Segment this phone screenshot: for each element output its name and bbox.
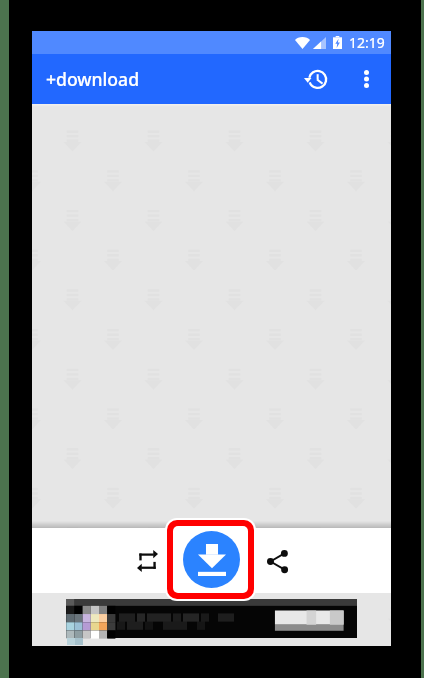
button[interactable]: More options [346,59,386,99]
button[interactable]: Download [183,531,240,588]
button[interactable]: History [294,57,338,101]
staticText: +download [46,67,140,91]
button[interactable]: Share [253,537,301,585]
staticText: 12:19 [349,33,385,52]
button[interactable]: Repeat [123,537,171,585]
